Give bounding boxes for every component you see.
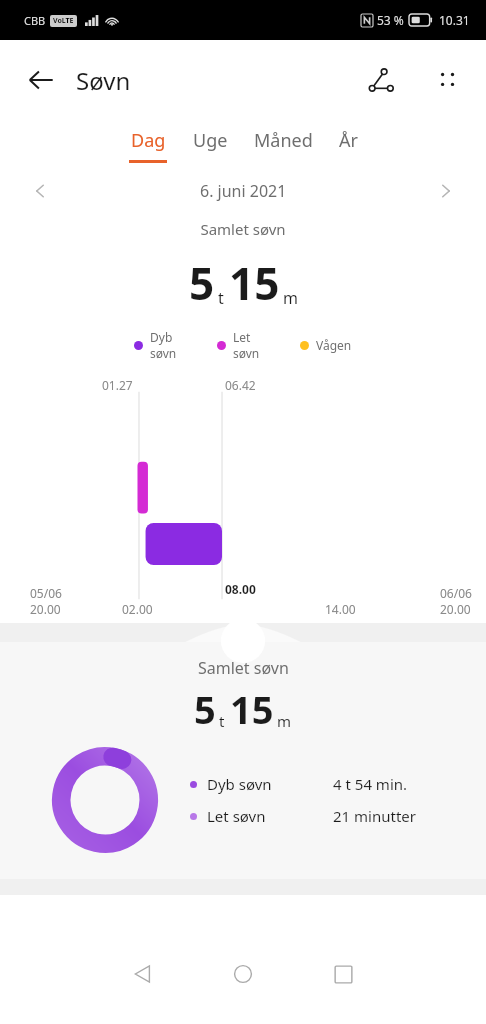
staticText: 05/06 bbox=[30, 585, 62, 601]
button[interactable]: Next day bbox=[428, 173, 464, 209]
staticText: Dyb bbox=[150, 329, 173, 345]
button[interactable]: Home bbox=[214, 945, 272, 1003]
button[interactable]: År bbox=[333, 124, 364, 167]
staticText: t bbox=[218, 287, 224, 309]
staticText: Vågen bbox=[316, 337, 352, 353]
staticText: 06.42 bbox=[225, 377, 256, 393]
staticText: 6. juni 2021 bbox=[200, 180, 287, 202]
button[interactable]: Previous day bbox=[22, 173, 58, 209]
staticText: 15 bbox=[229, 253, 280, 313]
staticText: m bbox=[283, 287, 298, 309]
staticText: 10.31 bbox=[439, 12, 470, 28]
staticText: 02.00 bbox=[122, 601, 153, 617]
staticText: Dyb søvn bbox=[207, 774, 272, 794]
button[interactable]: Måned bbox=[248, 124, 319, 167]
staticText: Let søvn bbox=[207, 806, 266, 826]
staticText: 15 bbox=[230, 683, 274, 735]
button[interactable]: More options bbox=[424, 57, 470, 103]
staticText: 21 minutter bbox=[333, 806, 416, 826]
staticText: Samlet søvn bbox=[0, 219, 486, 239]
staticText: 08.00 bbox=[225, 581, 256, 597]
staticText: søvn bbox=[233, 345, 260, 361]
staticText: 53 % bbox=[377, 12, 404, 28]
button[interactable]: Recent apps bbox=[314, 945, 372, 1003]
staticText: 14.00 bbox=[325, 601, 356, 617]
staticText: År bbox=[339, 128, 358, 153]
button[interactable]: Dag bbox=[123, 124, 173, 167]
staticText: 4 t 54 min. bbox=[333, 774, 408, 794]
staticText: 20.00 bbox=[30, 601, 61, 617]
staticText: Dag bbox=[131, 128, 166, 153]
staticText: Samlet søvn bbox=[198, 657, 289, 679]
staticText: Uge bbox=[193, 128, 228, 153]
button[interactable]: Uge bbox=[187, 124, 234, 167]
staticText: 01.27 bbox=[102, 377, 133, 393]
staticText: Måned bbox=[254, 128, 313, 153]
button[interactable]: Share bbox=[358, 57, 404, 103]
staticText: søvn bbox=[150, 345, 177, 361]
staticText: 5 bbox=[194, 683, 216, 735]
staticText: t bbox=[219, 711, 225, 731]
staticText: 20.00 bbox=[440, 601, 471, 617]
staticText: Søvn bbox=[76, 64, 131, 97]
staticText: VoLTE bbox=[53, 16, 74, 26]
staticText: CBB bbox=[24, 13, 46, 28]
staticText: Let bbox=[233, 329, 251, 345]
staticText: 06/06 bbox=[440, 585, 472, 601]
button[interactable]: Back bbox=[18, 57, 64, 103]
button[interactable]: Back bbox=[114, 945, 172, 1003]
staticText: 5 bbox=[189, 253, 215, 313]
staticText: m bbox=[277, 711, 292, 731]
